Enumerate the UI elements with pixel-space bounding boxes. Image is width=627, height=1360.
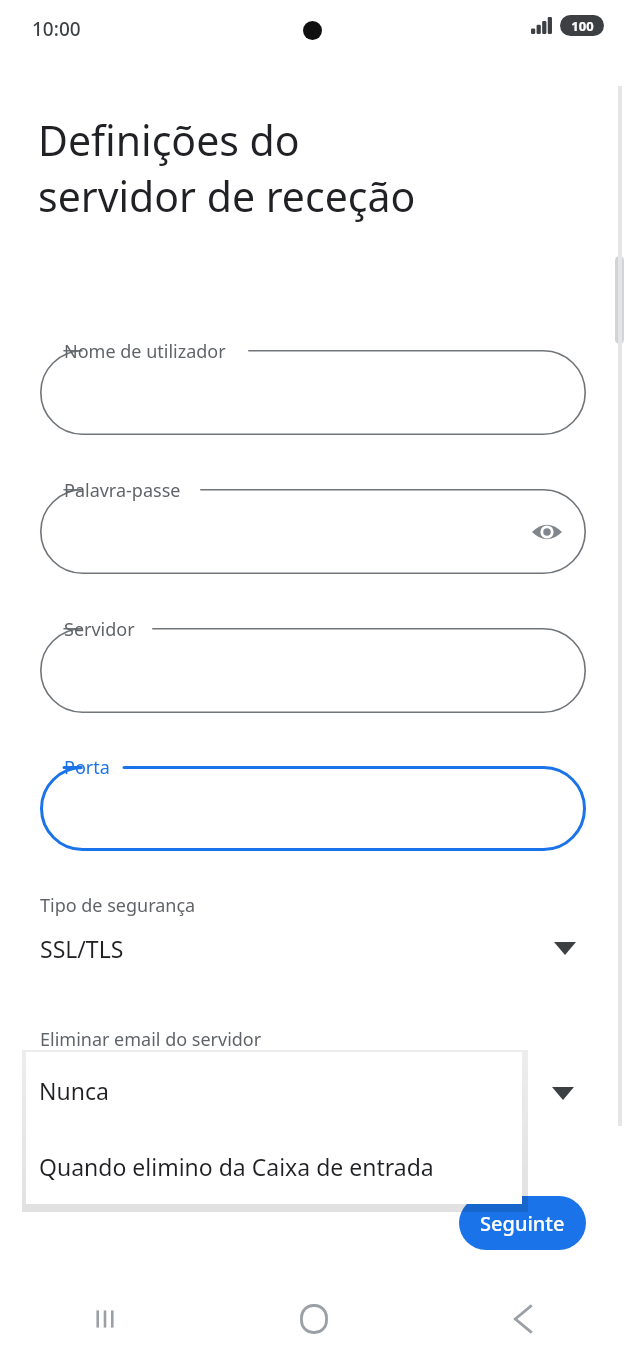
button[interactable]: Seguinte [459,1196,586,1250]
button[interactable]: Voltar [418,1278,627,1360]
staticText: Palavra-passe [64,478,181,503]
staticText: Seguinte [480,1210,565,1237]
button[interactable]: SSL/TLS [38,920,590,976]
button[interactable]: Nome de utilizador [40,350,586,435]
button[interactable]: Porta [40,766,586,851]
staticText: servidor de receção [38,168,416,224]
button[interactable]: Palavra-passe [40,489,586,574]
button[interactable]: Abrir opções [526,1060,600,1126]
staticText: Quando elimino da Caixa de entrada [39,1151,434,1182]
button[interactable]: Mostrar palavra-passe [523,508,571,556]
staticText: Nunca [39,1075,109,1106]
button[interactable]: Servidor [40,628,586,713]
staticText: Nome de utilizador [64,339,226,364]
staticText: 100 [571,17,594,35]
staticText: Tipo de segurança [40,893,196,918]
button[interactable]: Quando elimino da Caixa de entrada [26,1128,522,1204]
staticText: Servidor [64,617,135,642]
staticText: SSL/TLS [40,933,124,964]
button[interactable]: Início [209,1278,418,1360]
staticText: Eliminar email do servidor [40,1027,262,1052]
staticText: Porta [64,755,110,780]
staticText: 10:00 [32,16,81,42]
button[interactable]: Recentes [0,1278,209,1360]
button[interactable]: Nunca [26,1052,522,1128]
staticText: Definições do [38,112,300,168]
